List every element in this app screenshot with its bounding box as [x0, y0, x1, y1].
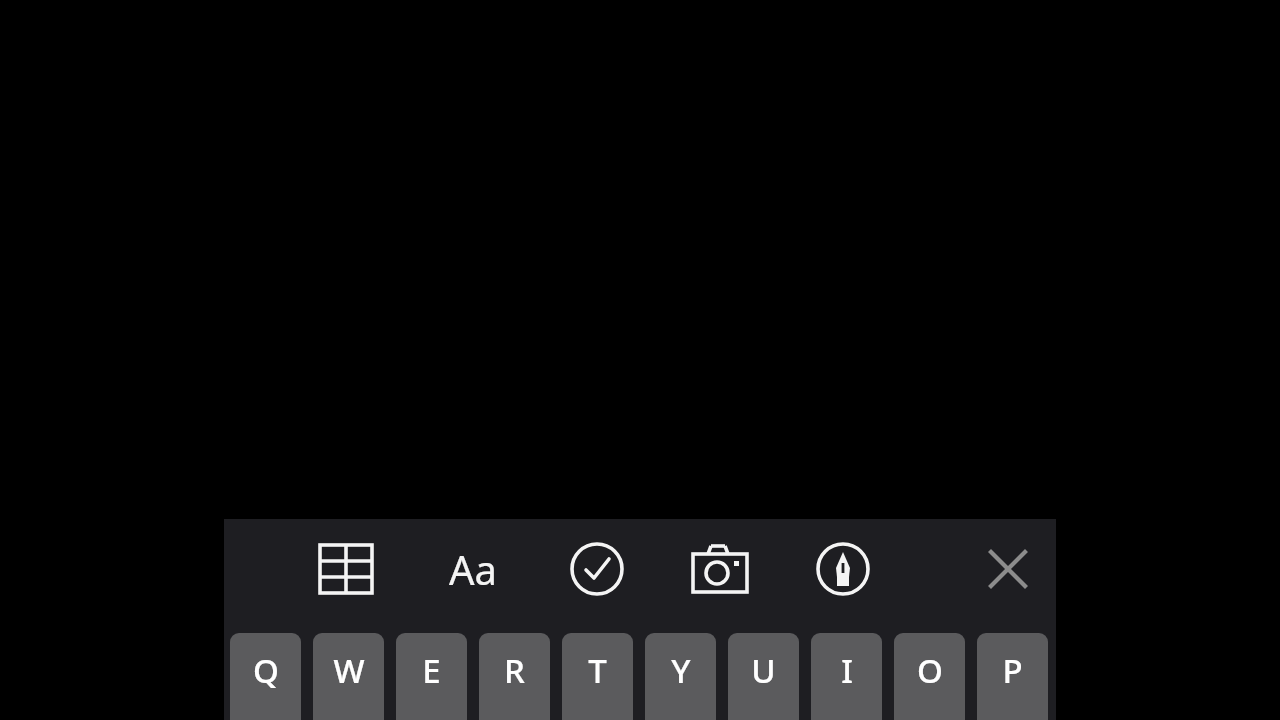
- button[interactable]: E: [396, 633, 467, 720]
- staticText: W: [333, 648, 365, 693]
- staticText: I: [841, 648, 853, 693]
- button[interactable]: O: [894, 633, 965, 720]
- button[interactable]: P: [977, 633, 1048, 720]
- button[interactable]: Checklist: [561, 533, 633, 605]
- button[interactable]: R: [479, 633, 550, 720]
- button[interactable]: Close: [972, 533, 1044, 605]
- button[interactable]: Q: [230, 633, 301, 720]
- staticText: E: [422, 648, 441, 693]
- staticText: Aa: [449, 542, 497, 596]
- staticText: T: [588, 648, 607, 693]
- button[interactable]: Aa: [437, 533, 509, 605]
- button[interactable]: I: [811, 633, 882, 720]
- staticText: O: [917, 648, 943, 693]
- button[interactable]: Y: [645, 633, 716, 720]
- button[interactable]: U: [728, 633, 799, 720]
- button[interactable]: Camera: [684, 533, 756, 605]
- staticText: Y: [671, 648, 691, 693]
- staticText: Q: [253, 648, 279, 693]
- staticText: R: [504, 648, 525, 693]
- staticText: P: [1002, 648, 1023, 693]
- button[interactable]: Draw: [807, 533, 879, 605]
- staticText: U: [751, 648, 776, 693]
- button[interactable]: Insert table: [310, 533, 382, 605]
- button[interactable]: T: [562, 633, 633, 720]
- button[interactable]: W: [313, 633, 384, 720]
